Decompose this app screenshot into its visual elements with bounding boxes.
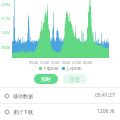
- staticText: 1.4M: [1, 30, 11, 35]
- staticText: 实时: [41, 76, 51, 82]
- staticText: 1206 米: [97, 108, 115, 115]
- button[interactable]: 历史: [63, 74, 87, 84]
- staticText: 下载(KB): [43, 66, 59, 71]
- staticText: 2.8M: [1, 2, 11, 7]
- staticText: 05:41:27: [95, 92, 115, 99]
- staticText: 2.1M: [1, 16, 11, 21]
- button[interactable]: 实时: [34, 74, 58, 84]
- staticText: 700K: [1, 45, 11, 50]
- button[interactable]: 移动数据: [0, 88, 120, 103]
- staticText: 累计下载: [13, 109, 33, 115]
- staticText: 上传(KB): [66, 66, 82, 71]
- staticText: 历史: [70, 76, 80, 82]
- button[interactable]: 累计下载: [0, 104, 120, 119]
- staticText: 09:40 12:00 15:00 18:00 21:00 00:00: [29, 60, 92, 65]
- staticText: 移动数据: [13, 93, 33, 99]
